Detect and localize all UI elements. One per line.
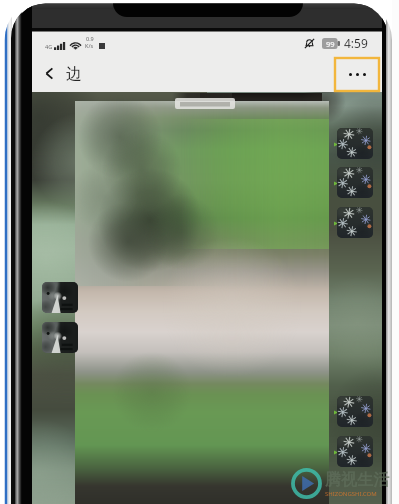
staticText: 4G — [45, 43, 53, 50]
staticText: 边 — [66, 64, 82, 84]
staticText: SHIZONGSHI.COM — [325, 490, 377, 498]
button[interactable]: Video thumbnail — [337, 167, 373, 198]
button[interactable]: Video thumbnail — [42, 282, 78, 313]
button[interactable]: Video thumbnail — [42, 322, 78, 353]
button[interactable]: Back — [32, 55, 66, 92]
button[interactable]: Video thumbnail — [337, 436, 373, 467]
button[interactable]: Video thumbnail — [337, 207, 373, 238]
staticText: 0.9 — [86, 35, 94, 42]
staticText: 99 — [326, 39, 335, 49]
button[interactable]: Video thumbnail — [337, 396, 373, 427]
staticText: 腾视生活 — [325, 470, 389, 490]
button[interactable]: More options — [335, 58, 379, 91]
staticText: 4:59 — [344, 35, 368, 51]
button[interactable]: Video thumbnail — [337, 128, 373, 159]
staticText: K/s — [85, 42, 94, 49]
